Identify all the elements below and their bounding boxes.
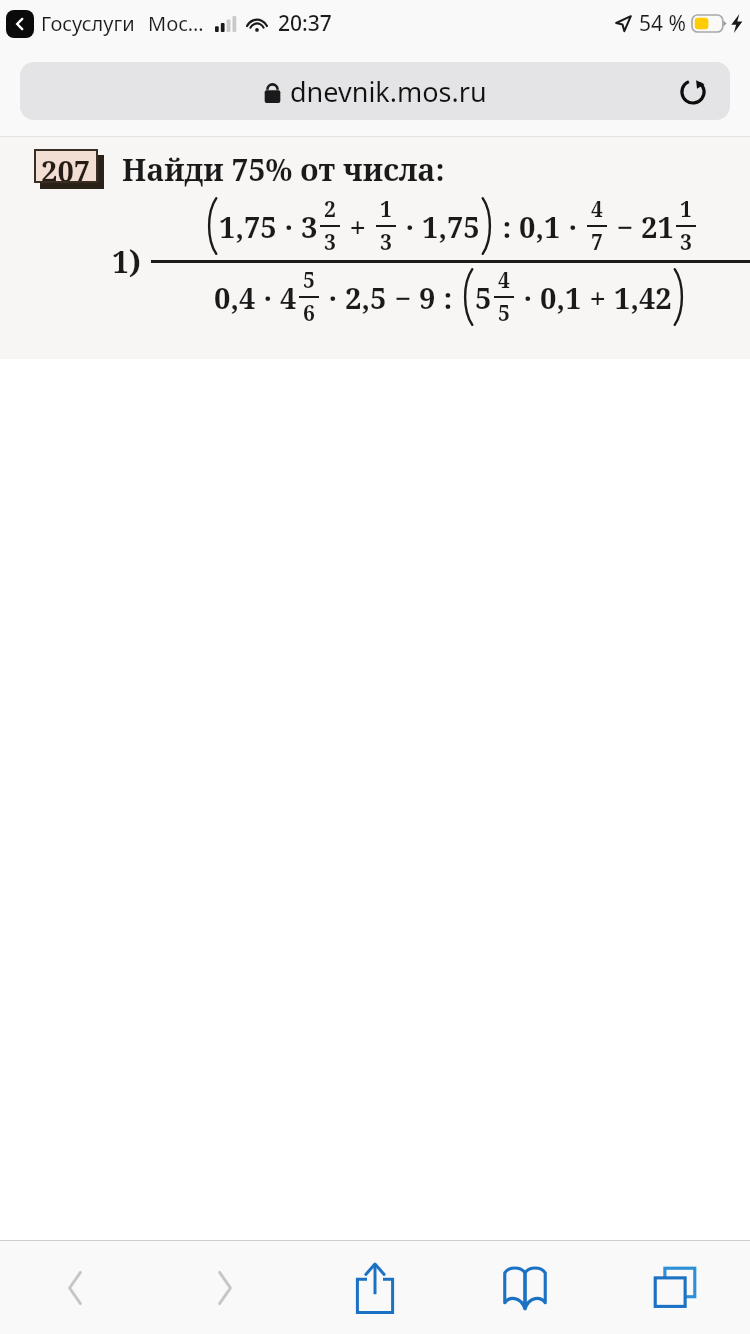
staticText: 5 [498,299,510,328]
staticText: 3 [380,228,392,257]
staticText: 6 [303,299,315,328]
staticText: + [342,207,374,246]
staticText: 20:37 [278,9,332,38]
button[interactable]: dnevnik.mos.ru [20,62,730,120]
staticText: − [387,278,419,317]
staticText: 54 % [639,9,686,38]
staticText: dnevnik.mos.ru [290,73,487,110]
staticText: 2 [324,195,336,224]
staticText: · [561,207,585,246]
staticText: Найди 75% от числа: [122,149,445,190]
staticText: · [321,278,345,317]
staticText: 7 [591,228,603,257]
staticText: : [436,278,460,317]
staticText: 4 [280,278,297,317]
staticText: 5 [303,266,315,295]
staticText: 21 [641,207,674,246]
staticText: Госуслуги [41,10,135,37]
staticText: 1,75 [219,207,277,246]
staticText: 3 [301,207,318,246]
staticText: 1,42 [614,278,672,317]
staticText: 1,75 [422,207,480,246]
button[interactable]: Reload page [670,68,716,114]
staticText: 207 [41,151,91,181]
button[interactable]: Tabs [600,1241,750,1334]
button[interactable]: Back to Госуслуги [6,10,34,38]
staticText: Moc… [148,10,204,37]
staticText: 2,5 [345,278,387,317]
staticText: 4 [498,266,510,295]
staticText: · [256,278,280,317]
staticText: 5 [475,278,492,317]
staticText: · [277,207,301,246]
staticText: 3 [680,228,692,257]
staticText: 0,1 [519,207,561,246]
staticText: · [516,278,540,317]
staticText: 1) [112,241,141,282]
staticText: + [582,278,614,317]
button[interactable]: Share [300,1241,450,1334]
staticText: · [398,207,422,246]
staticText: 0,1 [540,278,582,317]
staticText: 1 [380,195,392,224]
staticText: 9 [419,278,436,317]
button[interactable]: Bookmarks [450,1241,600,1334]
staticText: 0,4 [214,278,256,317]
button[interactable]: Back [0,1241,150,1334]
staticText: : [495,207,519,246]
staticText: 3 [324,228,336,257]
staticText: 1 [680,195,692,224]
staticText: − [609,207,641,246]
staticText: 4 [591,195,603,224]
button[interactable]: Forward [150,1241,300,1334]
